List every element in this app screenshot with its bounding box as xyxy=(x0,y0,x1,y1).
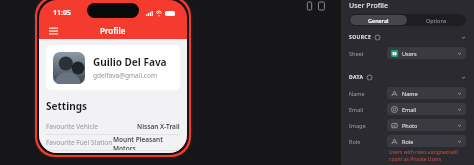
staticText: Favourite Fuel Station xyxy=(46,138,113,147)
staticText: Settings xyxy=(46,99,87,113)
staticText: Users with roles assigned will count as … xyxy=(389,149,458,163)
staticText: General xyxy=(368,17,389,24)
staticText: Sheet xyxy=(349,50,387,57)
button[interactable]: Role xyxy=(387,135,466,147)
staticText: Role xyxy=(402,138,414,145)
staticText: 11:05 xyxy=(53,8,71,18)
button[interactable]: Users xyxy=(387,47,466,59)
staticText: Guilio Del Fava xyxy=(93,55,167,69)
button[interactable]: Favourite Fuel Type xyxy=(46,151,180,153)
button[interactable]: Name xyxy=(387,87,466,99)
staticText: User Profile xyxy=(349,1,389,11)
button[interactable]: Guilio Del Fava xyxy=(46,45,180,90)
staticText: DATA xyxy=(349,74,364,81)
button[interactable]: Favourite Fuel Station xyxy=(46,135,180,151)
button[interactable]: Phone preview xyxy=(306,2,313,10)
staticText: Email xyxy=(402,106,417,113)
staticText: Email xyxy=(349,106,387,113)
button[interactable]: Options xyxy=(407,15,465,25)
staticText: SOURCE xyxy=(349,34,372,41)
staticText: Options xyxy=(426,17,447,24)
staticText: Nissan X-Trail xyxy=(137,122,180,131)
staticText: Image xyxy=(349,122,387,129)
staticText: Name xyxy=(349,90,387,97)
button[interactable]: Tablet preview xyxy=(318,2,325,10)
button[interactable]: Photo xyxy=(387,119,466,131)
button[interactable]: Menu xyxy=(49,26,58,35)
button[interactable]: DATA xyxy=(341,72,474,83)
staticText: Dynamic Diesel 50ppm xyxy=(107,151,180,153)
button[interactable]: General xyxy=(350,15,407,25)
staticText: Mount Pleasant Motors xyxy=(113,135,180,150)
staticText: Profile xyxy=(100,25,126,36)
staticText: Users xyxy=(402,50,417,57)
staticText: Favourite Fuel Type xyxy=(46,151,106,153)
staticText: Photo xyxy=(402,122,418,129)
staticText: Favourite Vehicle xyxy=(46,122,98,131)
staticText: gdelfava@gmail.com xyxy=(93,71,157,80)
button[interactable]: Email xyxy=(387,103,466,115)
button[interactable]: SOURCE xyxy=(341,32,474,43)
button[interactable]: Favourite Vehicle xyxy=(46,119,180,135)
staticText: Role xyxy=(349,138,387,145)
staticText: Name xyxy=(402,90,418,97)
